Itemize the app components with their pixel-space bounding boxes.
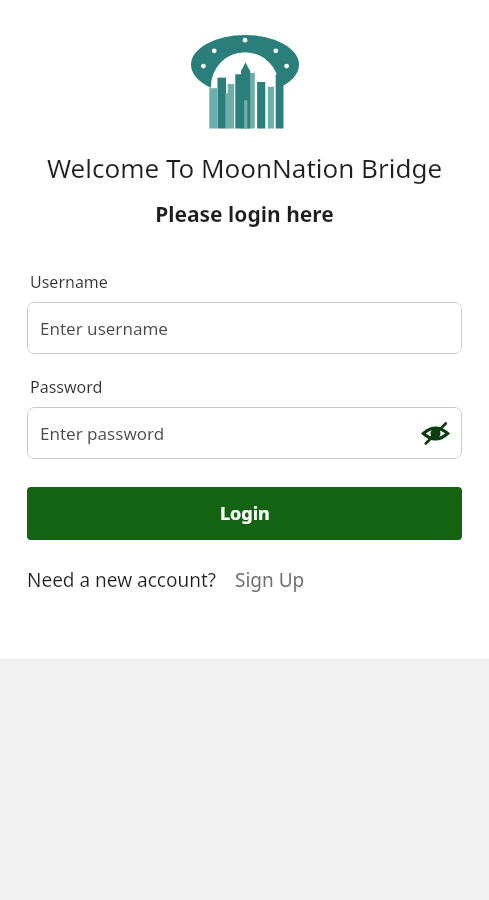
staticText: Username bbox=[30, 271, 108, 293]
staticText: Welcome To MoonNation Bridge bbox=[0, 150, 489, 185]
staticText: Enter password bbox=[40, 422, 418, 445]
button[interactable]: Sign Up bbox=[235, 567, 305, 593]
staticText: Enter username bbox=[40, 317, 168, 340]
staticText: Need a new account? bbox=[27, 567, 217, 593]
button[interactable]: Show password bbox=[418, 416, 452, 450]
staticText: Sign Up bbox=[235, 567, 305, 593]
staticText: Login bbox=[220, 501, 270, 526]
staticText: Please login here bbox=[0, 200, 489, 229]
button[interactable]: Enter password bbox=[27, 407, 462, 459]
staticText: Password bbox=[30, 376, 103, 398]
button[interactable]: Login bbox=[27, 487, 462, 540]
button[interactable]: Enter username bbox=[27, 302, 462, 354]
